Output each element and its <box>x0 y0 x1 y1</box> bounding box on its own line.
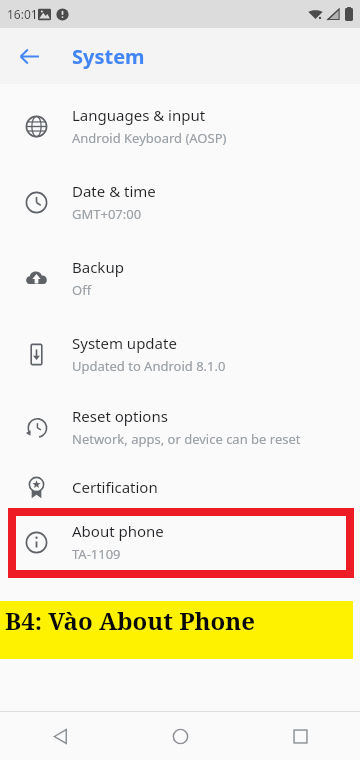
staticText: 16:01 <box>7 6 38 22</box>
button[interactable]: Navigate up <box>14 41 44 71</box>
button[interactable]: Backup <box>0 248 360 308</box>
button[interactable]: Recent apps <box>240 712 360 760</box>
staticText: About phone <box>72 521 164 541</box>
staticText: Certification <box>72 477 158 497</box>
staticText: Reset options <box>72 406 168 426</box>
button[interactable]: Certification <box>0 462 360 512</box>
staticText: Backup <box>72 257 124 277</box>
button[interactable]: System update <box>0 324 360 384</box>
staticText: System update <box>72 333 177 353</box>
button[interactable]: Home <box>120 712 240 760</box>
staticText: Languages & input <box>72 105 206 125</box>
button[interactable]: Languages & input <box>0 96 360 156</box>
staticText: Off <box>72 281 92 299</box>
button[interactable]: Date & time <box>0 172 360 232</box>
staticText: TA-1109 <box>72 545 121 563</box>
staticText: Network, apps, or device can be reset <box>72 430 301 448</box>
button[interactable]: Reset options <box>0 397 360 457</box>
staticText: System <box>72 43 145 70</box>
staticText: Date & time <box>72 181 156 201</box>
staticText: Updated to Android 8.1.0 <box>72 357 226 375</box>
staticText: B4: Vào About Phone <box>5 604 256 637</box>
button[interactable]: Back <box>0 712 120 760</box>
button[interactable]: About phone <box>0 512 360 572</box>
staticText: Android Keyboard (AOSP) <box>72 129 227 147</box>
staticText: GMT+07:00 <box>72 205 142 223</box>
